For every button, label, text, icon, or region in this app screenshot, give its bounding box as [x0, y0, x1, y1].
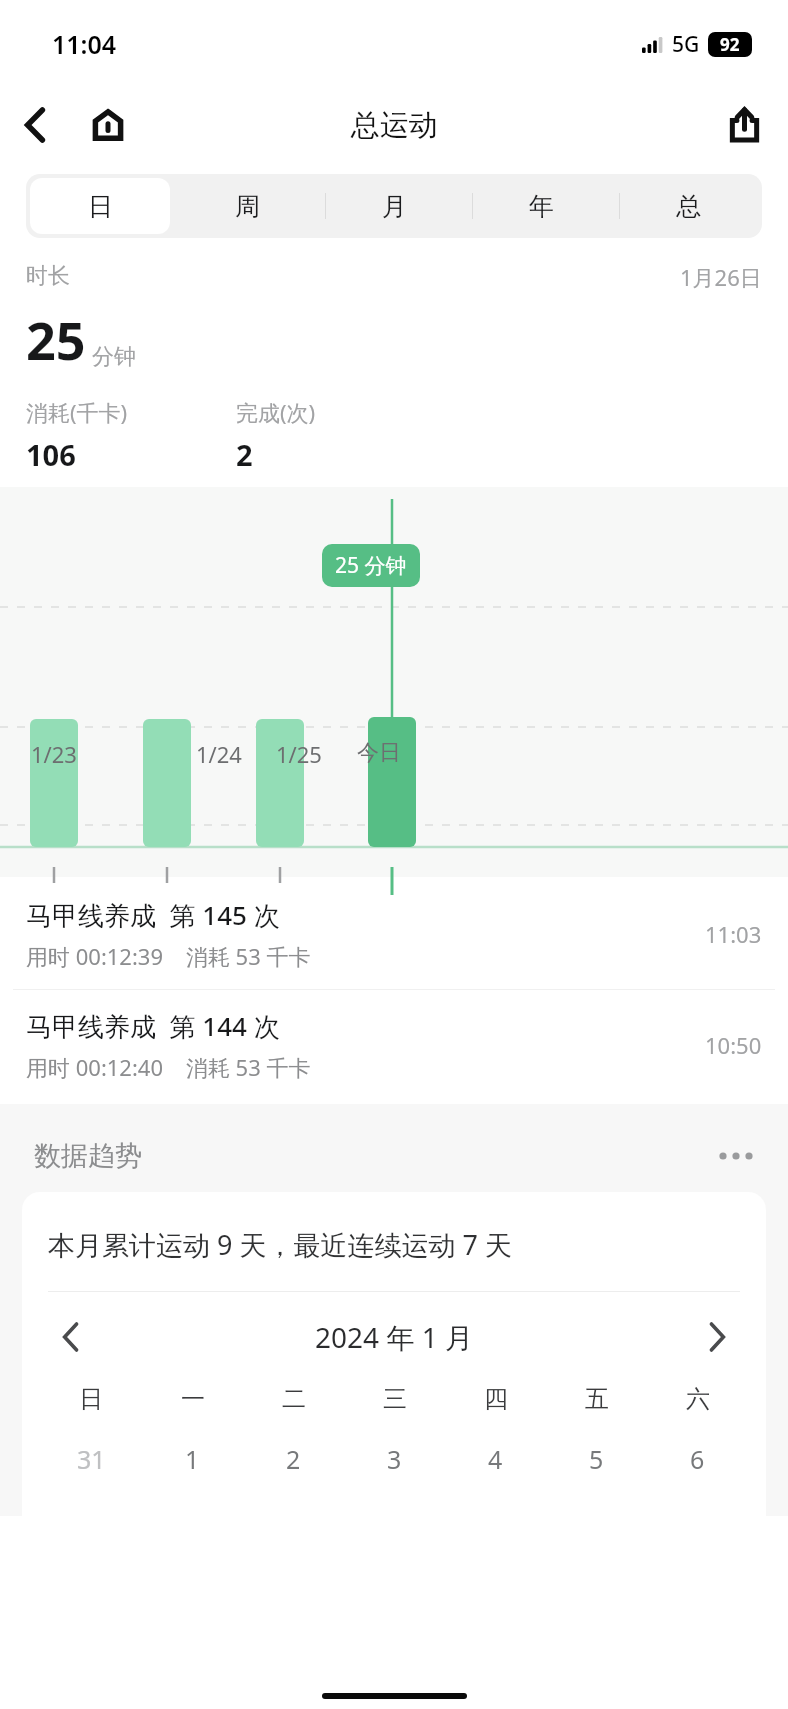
staticText: 11:03	[705, 919, 762, 949]
staticText: 四	[484, 1384, 508, 1414]
staticText: 五	[585, 1384, 609, 1414]
staticText: 11:04	[52, 27, 117, 61]
staticText: 1月26日	[680, 262, 762, 292]
button[interactable]: 总	[619, 178, 758, 234]
staticText: 6	[690, 1442, 705, 1476]
staticText: 完成(次)	[236, 397, 316, 427]
button[interactable]: 日	[30, 178, 170, 234]
staticText: 周	[235, 191, 260, 222]
staticText: 25 分钟	[335, 551, 407, 580]
staticText: 马甲线养成 第 145 次	[26, 897, 280, 933]
staticText: 月	[382, 191, 407, 222]
staticText: 2024 年 1 月	[94, 1318, 694, 1356]
staticText: 总运动	[351, 107, 438, 144]
staticText: 二	[282, 1384, 306, 1414]
button[interactable]: Back	[14, 103, 58, 147]
staticText: 用时 00:12:40 消耗 53 千卡	[26, 1052, 311, 1082]
staticText: 一	[181, 1384, 205, 1414]
staticText: 10:50	[705, 1030, 762, 1060]
staticText: 年	[529, 191, 554, 222]
staticText: 用时 00:12:39 消耗 53 千卡	[26, 941, 311, 971]
staticText: 92	[720, 33, 740, 56]
staticText: 日	[79, 1384, 103, 1414]
staticText: 1/25	[276, 739, 322, 769]
staticText: 5G	[672, 30, 700, 59]
button[interactable]: Previous month	[48, 1314, 94, 1360]
button[interactable]: 年	[472, 178, 611, 234]
button[interactable]: Share	[720, 101, 768, 149]
button[interactable]: 马甲线养成 第 145 次	[0, 891, 788, 977]
staticText: 1	[185, 1442, 200, 1476]
staticText: 3	[387, 1442, 402, 1476]
staticText: 总	[676, 191, 701, 222]
button[interactable]: 周	[178, 178, 317, 234]
staticText: 25	[26, 304, 86, 375]
staticText: 数据趋势	[34, 1139, 714, 1173]
staticText: 1/24	[196, 739, 242, 769]
staticText: 106	[26, 435, 76, 474]
staticText: 分钟	[92, 343, 136, 371]
staticText: 六	[686, 1384, 710, 1414]
button[interactable]: 月	[325, 178, 464, 234]
staticText: 本月累计运动 9 天，最近连续运动 7 天	[48, 1226, 512, 1263]
staticText: 时长	[26, 262, 70, 290]
staticText: 2	[286, 1442, 301, 1476]
button[interactable]: Next month	[694, 1314, 740, 1360]
staticText: 消耗(千卡)	[26, 397, 128, 427]
staticText: 1/23	[31, 739, 77, 769]
staticText: 31	[77, 1442, 106, 1476]
button[interactable]: More	[714, 1134, 758, 1178]
button[interactable]: 马甲线养成 第 144 次	[0, 1002, 788, 1088]
staticText: 今日	[357, 739, 401, 767]
staticText: 4	[488, 1442, 503, 1476]
staticText: 三	[383, 1384, 407, 1414]
staticText: 2	[236, 435, 253, 474]
staticText: 日	[88, 191, 113, 222]
staticText: 5	[589, 1442, 604, 1476]
staticText: 马甲线养成 第 144 次	[26, 1008, 280, 1044]
button[interactable]: Home	[86, 103, 130, 147]
